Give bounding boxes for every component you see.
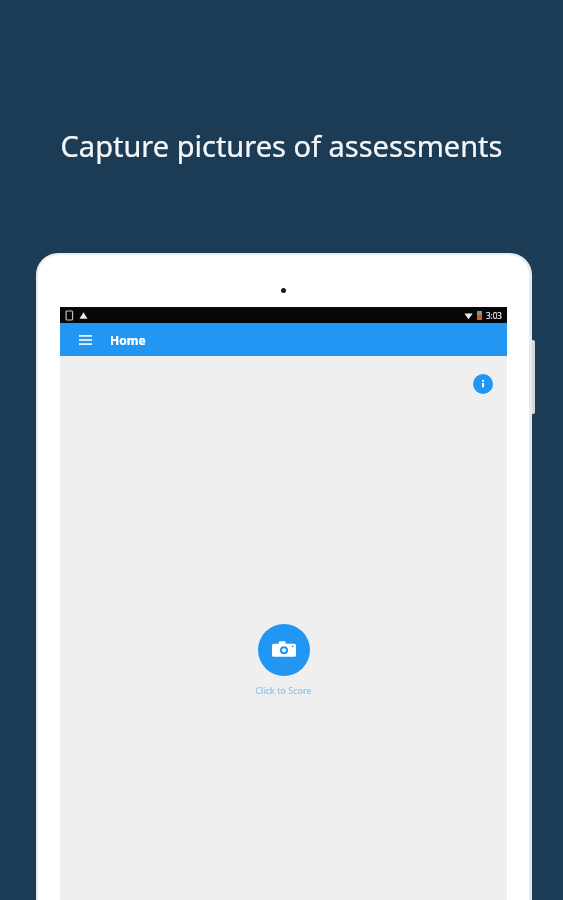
button[interactable]: Open navigation menu bbox=[74, 329, 96, 351]
button[interactable]: Information bbox=[473, 374, 493, 394]
staticText: Capture pictures of assessments bbox=[0, 126, 563, 165]
staticText: 3:03 bbox=[486, 310, 502, 321]
staticText: Click to Score bbox=[255, 684, 312, 696]
button[interactable]: Click to Score, take picture bbox=[258, 624, 310, 676]
staticText: Home bbox=[110, 332, 146, 348]
